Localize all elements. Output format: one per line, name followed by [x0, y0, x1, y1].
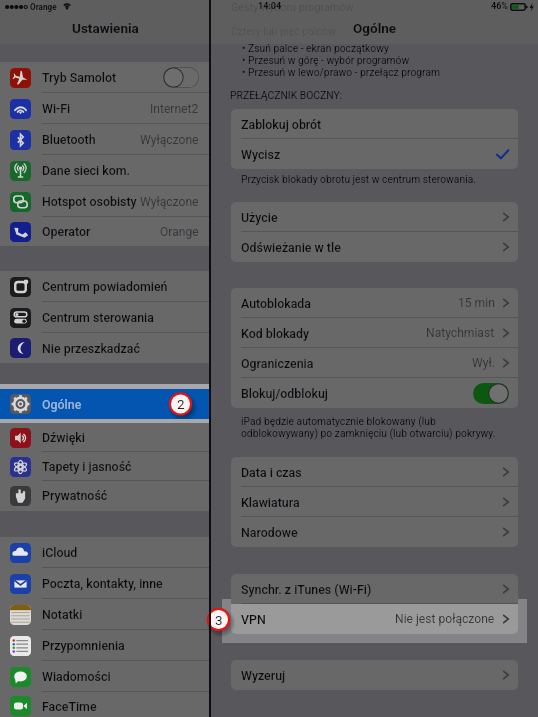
- button[interactable]: Ogólne: [0, 389, 210, 419]
- staticText: Wyłączone: [140, 195, 199, 209]
- staticText: Wi-Fi: [42, 101, 71, 116]
- staticText: Wycisz: [241, 147, 281, 162]
- button[interactable]: Zablokuj obrót: [231, 109, 518, 139]
- button[interactable]: Autoblokada: [231, 288, 518, 318]
- staticText: Użycie: [241, 210, 278, 225]
- staticText: Dane sieci kom.: [42, 163, 130, 178]
- button[interactable]: Kod blokady: [231, 318, 518, 348]
- staticText: • Przesuń w górę - wybór programów: [242, 54, 410, 66]
- button[interactable]: Toggle on: [473, 383, 509, 404]
- staticText: Centrum powiadomień: [42, 279, 168, 294]
- staticText: Ustawienia: [72, 20, 139, 36]
- button[interactable]: Klawiatura: [231, 487, 518, 517]
- staticText: Blokuj/odblokuj: [241, 386, 328, 401]
- staticText: Narodowe: [241, 525, 298, 540]
- staticText: Przypomnienia: [42, 638, 125, 653]
- staticText: PRZEŁĄCZNIK BOCZNY:: [230, 89, 343, 101]
- button[interactable]: Centrum powiadomień: [0, 271, 210, 302]
- staticText: Poczta, kontakty, inne: [42, 576, 163, 591]
- button[interactable]: Użycie: [231, 202, 518, 232]
- staticText: Klawiatura: [241, 495, 300, 510]
- staticText: • Zsuń palce - ekran początkowy: [242, 42, 389, 54]
- staticText: Nie jest połączone: [395, 612, 495, 626]
- staticText: Orange: [30, 2, 57, 12]
- button[interactable]: Blokuj/odblokuj: [231, 378, 518, 408]
- button[interactable]: Operator: [0, 217, 210, 246]
- staticText: Hotspot osobisty: [42, 194, 137, 209]
- button[interactable]: Wi-Fi: [0, 93, 210, 124]
- button[interactable]: Hotspot osobisty: [0, 186, 210, 217]
- button[interactable]: Narodowe: [231, 517, 518, 547]
- staticText: 2: [177, 396, 185, 412]
- button[interactable]: Bluetooth: [0, 124, 210, 155]
- button[interactable]: Ograniczenia: [231, 348, 518, 378]
- staticText: Przycisk blokady obrotu jest w centrum s…: [241, 173, 476, 185]
- button[interactable]: Poczta, kontakty, inne: [0, 568, 210, 599]
- button[interactable]: Tapety i jasność: [0, 452, 210, 481]
- staticText: 3: [215, 612, 223, 628]
- staticText: iPad będzie automatycznie blokowany (lub: [241, 415, 436, 427]
- staticText: 14:04: [258, 1, 282, 12]
- staticText: Centrum sterowania: [42, 310, 154, 325]
- staticText: Wiadomości: [42, 669, 111, 684]
- button[interactable]: Toggle off: [163, 67, 199, 88]
- staticText: Bluetooth: [42, 132, 96, 147]
- staticText: FaceTime: [42, 699, 97, 714]
- button[interactable]: Tryb Samolot: [0, 62, 210, 93]
- button[interactable]: Synchr. z iTunes (Wi-Fi): [231, 574, 518, 604]
- staticText: Cztery lub pięć palców:: [231, 25, 339, 37]
- staticText: • Przesuń w lewo/prawo - przełącz progra…: [242, 66, 441, 78]
- staticText: Ogólne: [42, 397, 82, 412]
- staticText: Wyzeruj: [241, 668, 286, 683]
- button[interactable]: Dźwięki: [0, 423, 210, 452]
- staticText: Nie przeszkadzać: [42, 341, 140, 356]
- staticText: Data i czas: [241, 465, 302, 480]
- staticText: Autoblokada: [241, 296, 312, 311]
- staticText: Kod blokady: [241, 326, 310, 341]
- staticText: Tryb Samolot: [42, 70, 117, 85]
- button[interactable]: Odświeżanie w tle: [231, 232, 518, 262]
- button[interactable]: Dane sieci kom.: [0, 155, 210, 186]
- button[interactable]: Wycisz: [231, 139, 518, 169]
- button[interactable]: VPN: [231, 604, 518, 634]
- staticText: Operator: [42, 224, 91, 239]
- staticText: 46%: [491, 1, 508, 12]
- staticText: Wyłączone: [140, 133, 199, 147]
- staticText: 15 min: [458, 296, 495, 310]
- button[interactable]: Wiadomości: [0, 661, 210, 692]
- staticText: Ograniczenia: [241, 356, 314, 371]
- staticText: Wył.: [472, 356, 495, 370]
- staticText: odblokowywany) po zamknięciu (lub otwarc…: [241, 427, 496, 439]
- button[interactable]: iCloud: [0, 537, 210, 568]
- staticText: VPN: [241, 612, 266, 627]
- staticText: iCloud: [42, 545, 78, 560]
- staticText: Internet2: [150, 102, 199, 116]
- button[interactable]: FaceTime: [0, 692, 210, 717]
- button[interactable]: Wyzeruj: [231, 660, 518, 690]
- button[interactable]: Nie przeszkadzać: [0, 333, 210, 363]
- button[interactable]: Centrum sterowania: [0, 302, 210, 333]
- staticText: Gesty wyboru programów: [231, 1, 354, 14]
- staticText: Odświeżanie w tle: [241, 240, 341, 255]
- button[interactable]: Prywatność: [0, 481, 210, 510]
- staticText: Orange: [160, 225, 199, 239]
- staticText: Notatki: [42, 607, 83, 622]
- staticText: Ogólne: [353, 20, 397, 36]
- button[interactable]: Notatki: [0, 599, 210, 630]
- staticText: Prywatność: [42, 488, 108, 503]
- staticText: Tapety i jasność: [42, 459, 132, 474]
- staticText: Natychmiast: [426, 326, 495, 340]
- staticText: Dźwięki: [42, 430, 85, 445]
- button[interactable]: Data i czas: [231, 457, 518, 487]
- button[interactable]: Przypomnienia: [0, 630, 210, 661]
- staticText: Zablokuj obrót: [241, 117, 322, 132]
- staticText: Synchr. z iTunes (Wi-Fi): [241, 582, 372, 597]
